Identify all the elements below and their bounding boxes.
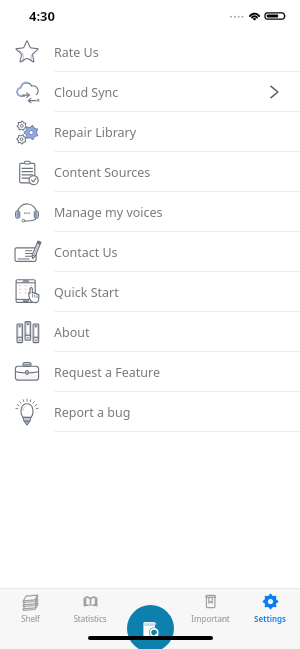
button[interactable]: Request a Feature [0,352,300,392]
staticText: Cloud Sync [54,84,119,101]
staticText: Repair Library [54,124,137,141]
button[interactable]: Quick Start [0,272,300,312]
button[interactable]: Rate Us [0,32,300,72]
staticText: Content Sources [54,164,151,181]
staticText: Rate Us [54,44,99,61]
button[interactable]: Search library [127,605,174,649]
button[interactable]: Content Sources [0,152,300,192]
staticText: Quick Start [54,284,119,301]
button[interactable]: Report a bug [0,392,300,432]
button[interactable]: Important [180,589,240,649]
staticText: Settings [254,613,286,624]
staticText: Request a Feature [54,364,161,381]
button[interactable]: About [0,312,300,352]
staticText: About [54,324,90,341]
button[interactable]: Statistics [60,589,120,649]
staticText: Report a bug [54,404,131,421]
staticText: Shelf [21,613,40,624]
button[interactable]: Shelf [0,589,60,649]
staticText: Important [191,613,230,624]
button[interactable]: Contact Us [0,232,300,272]
button[interactable]: Cloud Sync [0,72,300,112]
button[interactable]: Repair Library [0,112,300,152]
staticText: 4:30 [29,7,55,25]
staticText: Contact Us [54,244,118,261]
button[interactable]: Settings [240,589,300,649]
button[interactable]: Manage my voices [0,192,300,232]
staticText: Statistics [73,613,107,624]
staticText: Manage my voices [54,204,163,221]
